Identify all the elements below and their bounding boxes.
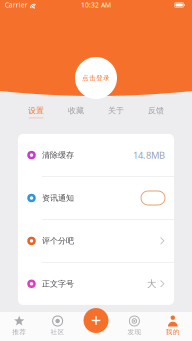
button[interactable]: 发现 xyxy=(115,311,154,341)
staticText: 10:32 AM xyxy=(81,1,111,9)
staticText: 点击登录 xyxy=(82,74,110,82)
button[interactable]: 点击登录 xyxy=(75,57,117,99)
button[interactable]: 推荐 xyxy=(0,311,38,341)
button[interactable]: 反馈 xyxy=(136,101,176,123)
button[interactable]: 清除缓存 xyxy=(18,134,174,176)
staticText: 收藏 xyxy=(68,106,84,115)
button[interactable]: 收藏 xyxy=(56,101,96,123)
button[interactable]: 社区 xyxy=(38,311,77,341)
staticText: Carrier xyxy=(5,1,28,9)
staticText: 关于 xyxy=(108,106,124,115)
staticText: 推荐 xyxy=(12,328,26,336)
button[interactable]: 设置 xyxy=(16,101,56,123)
staticText: 清除缓存 xyxy=(42,150,74,160)
button[interactable]: 正文字号 xyxy=(18,263,174,305)
staticText: 设置 xyxy=(28,106,44,115)
staticText: 资讯通知 xyxy=(42,193,74,203)
staticText: 我的 xyxy=(166,328,180,336)
staticText: 大 xyxy=(147,278,156,290)
staticText: 正文字号 xyxy=(42,279,74,289)
button[interactable]: Add xyxy=(77,305,115,335)
button[interactable]: 我的 xyxy=(154,311,192,341)
staticText: 反馈 xyxy=(148,106,164,115)
staticText: 发现 xyxy=(127,328,141,336)
staticText: 评个分吧 xyxy=(42,236,74,246)
button[interactable]: 评个分吧 xyxy=(18,220,174,262)
staticText: 社区 xyxy=(51,328,65,336)
staticText: 14.8MB xyxy=(133,149,165,161)
button[interactable]: 资讯通知 xyxy=(18,177,174,219)
button[interactable]: 关于 xyxy=(96,101,136,123)
